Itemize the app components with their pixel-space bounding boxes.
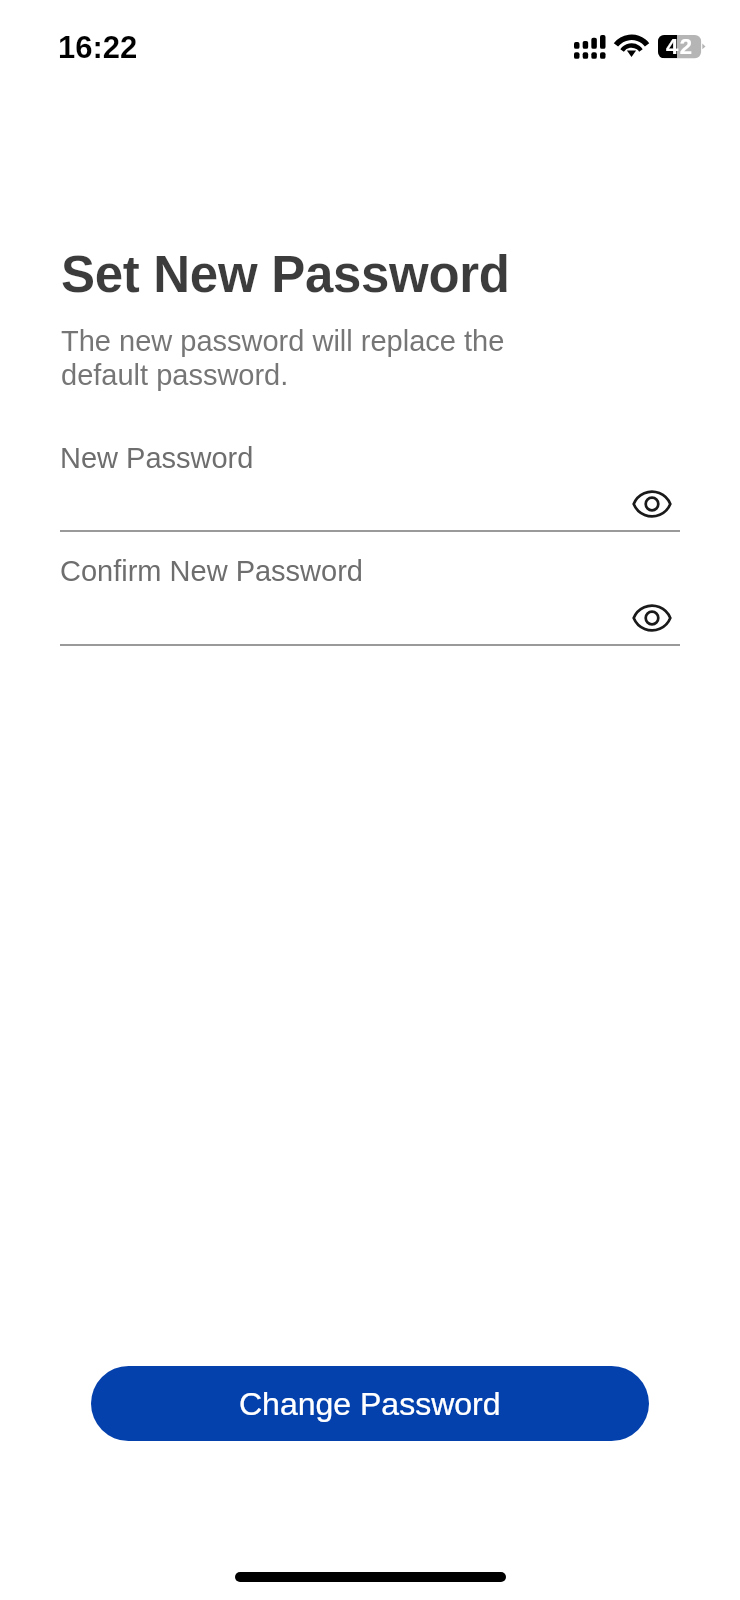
staticText: Change Password — [239, 1386, 501, 1422]
other: Battery 42 percent — [658, 34, 706, 58]
other: Wi-Fi — [616, 34, 647, 58]
other: Cellular signal — [574, 35, 606, 59]
button[interactable]: Show password — [60, 590, 672, 646]
staticText: Set New Password — [61, 246, 510, 303]
other: Show password — [632, 603, 672, 633]
button[interactable]: Change Password — [91, 1366, 649, 1441]
staticText: 42 — [666, 34, 694, 58]
button[interactable]: Show password — [60, 476, 672, 532]
other: Show password — [632, 489, 672, 519]
staticText: Confirm New Password — [60, 555, 363, 587]
staticText: 16:22 — [58, 30, 138, 65]
staticText: The new password will replace the defaul… — [61, 325, 505, 391]
staticText: New Password — [60, 442, 254, 474]
